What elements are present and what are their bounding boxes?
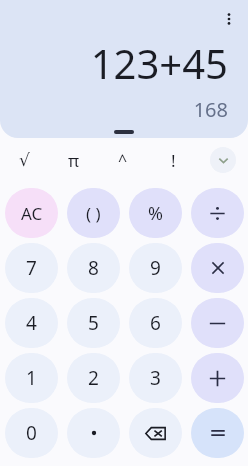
button[interactable]: 5: [67, 298, 120, 348]
button[interactable]: [67, 408, 120, 458]
button[interactable]: 9: [129, 243, 182, 293]
button[interactable]: √: [0, 142, 49, 178]
staticText: π: [68, 149, 80, 172]
button[interactable]: π: [49, 142, 98, 178]
button[interactable]: !: [148, 142, 198, 178]
button[interactable]: [191, 353, 244, 403]
staticText: 4: [26, 310, 37, 336]
button[interactable]: Backspace: [129, 408, 182, 458]
staticText: 9: [150, 255, 161, 281]
staticText: 123+45: [90, 36, 228, 90]
button[interactable]: More options: [216, 6, 242, 32]
staticText: 3: [150, 365, 161, 391]
staticText: AC: [21, 202, 43, 225]
staticText: √: [19, 150, 30, 170]
button[interactable]: [191, 298, 244, 348]
staticText: 0: [26, 420, 37, 446]
staticText: 168: [193, 96, 228, 123]
button[interactable]: ( ): [67, 188, 120, 238]
button[interactable]: 1: [5, 353, 58, 403]
staticText: 7: [26, 255, 37, 281]
button[interactable]: [191, 243, 244, 293]
staticText: 5: [88, 310, 99, 336]
staticText: ( ): [86, 202, 101, 225]
button[interactable]: Expand: [210, 147, 236, 173]
button[interactable]: ^: [98, 142, 148, 178]
button[interactable]: %: [129, 188, 182, 238]
button[interactable]: 8: [67, 243, 120, 293]
button[interactable]: [191, 408, 244, 458]
staticText: 8: [88, 255, 99, 281]
staticText: 2: [88, 365, 99, 391]
staticText: 6: [150, 310, 161, 336]
staticText: ^: [118, 149, 128, 171]
button[interactable]: AC: [5, 188, 58, 238]
button[interactable]: 4: [5, 298, 58, 348]
staticText: %: [148, 201, 163, 226]
button[interactable]: 3: [129, 353, 182, 403]
button[interactable]: 0: [5, 408, 58, 458]
button[interactable]: 7: [5, 243, 58, 293]
button[interactable]: 6: [129, 298, 182, 348]
staticText: !: [171, 149, 176, 172]
button[interactable]: [191, 188, 244, 238]
staticText: 1: [26, 365, 37, 391]
button[interactable]: 2: [67, 353, 120, 403]
